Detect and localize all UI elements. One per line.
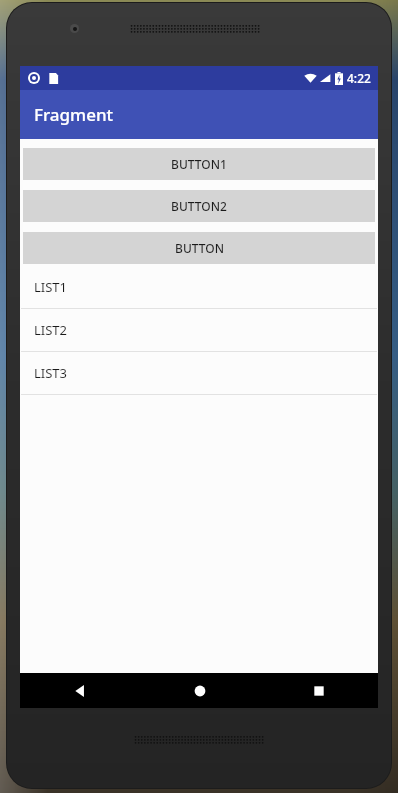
button[interactable]: BUTTON1 xyxy=(23,148,375,180)
staticText: BUTTON xyxy=(175,240,224,256)
staticText: BUTTON2 xyxy=(171,198,227,214)
staticText: LIST2 xyxy=(34,321,68,339)
staticText: LIST1 xyxy=(34,278,68,296)
button[interactable]: LIST1 xyxy=(20,266,378,309)
button[interactable]: Recent apps xyxy=(259,673,378,708)
button[interactable]: LIST3 xyxy=(20,352,378,395)
staticText: Fragment xyxy=(34,103,114,126)
staticText: LIST3 xyxy=(34,364,68,382)
staticText: BUTTON1 xyxy=(171,156,227,172)
button[interactable]: Home xyxy=(140,673,259,708)
button[interactable]: LIST2 xyxy=(20,309,378,352)
button[interactable]: BUTTON2 xyxy=(23,190,375,222)
button[interactable]: BUTTON xyxy=(23,232,375,264)
staticText: 4:22 xyxy=(347,70,371,86)
button[interactable]: Back xyxy=(20,673,140,708)
